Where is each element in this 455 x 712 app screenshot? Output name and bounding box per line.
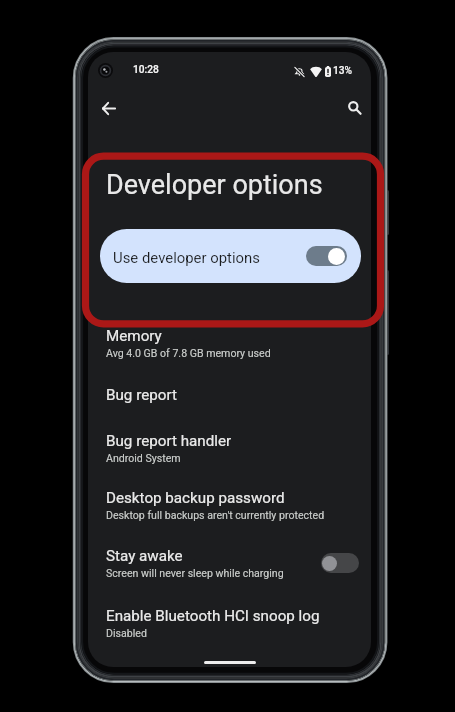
staticText: Enable Bluetooth HCI snoop log bbox=[106, 607, 320, 625]
staticText: 10:28 bbox=[133, 64, 159, 76]
staticText: Developer options bbox=[106, 169, 323, 201]
staticText: Memory bbox=[106, 327, 162, 345]
button[interactable]: Memory bbox=[88, 327, 371, 365]
button[interactable]: Bug report handler bbox=[88, 432, 371, 470]
button[interactable]: Stay awake switch bbox=[321, 553, 359, 573]
staticText: Disabled bbox=[106, 627, 147, 639]
staticText: Avg 4.0 GB of 7.8 GB memory used bbox=[106, 347, 271, 359]
button[interactable]: Back bbox=[93, 92, 125, 124]
button[interactable]: Search bbox=[340, 93, 370, 123]
button[interactable]: Bug report bbox=[88, 386, 371, 410]
staticText: Desktop full backups aren't currently pr… bbox=[106, 509, 325, 521]
button[interactable]: Stay awake bbox=[88, 547, 371, 585]
button[interactable]: Use developer options switch bbox=[306, 246, 347, 266]
staticText: Screen will never sleep while charging bbox=[106, 567, 284, 579]
button[interactable]: Desktop backup password bbox=[88, 489, 371, 527]
staticText: Use developer options bbox=[113, 249, 261, 266]
staticText: Android System bbox=[106, 452, 181, 464]
button[interactable]: Use developer options bbox=[100, 229, 361, 283]
staticText: 13% bbox=[333, 65, 353, 77]
staticText: Bug report handler bbox=[106, 432, 232, 450]
staticText: Bug report bbox=[106, 386, 177, 404]
staticText: Stay awake bbox=[106, 547, 183, 565]
staticText: Desktop backup password bbox=[106, 489, 285, 507]
button[interactable]: Enable Bluetooth HCI snoop log bbox=[88, 607, 371, 645]
